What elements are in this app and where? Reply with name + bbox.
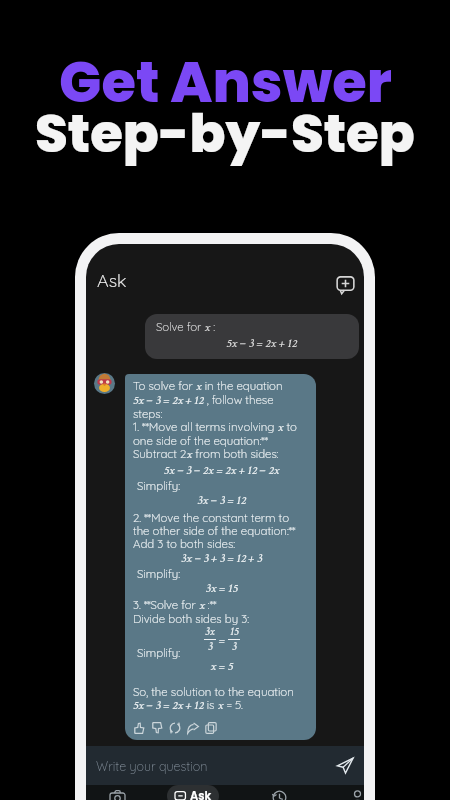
staticText: 3x [205,625,215,639]
button[interactable] [110,790,125,800]
staticText: 3 [208,640,213,654]
staticText: x = 5 [133,658,310,674]
staticText: = [216,632,228,648]
staticText: Step-by-Step [35,96,415,170]
staticText: 3. **Solve for x :** Divide both sides b… [133,597,250,625]
staticText: So, the solution to the equation 5x − 3 … [133,684,294,713]
staticText: Get Answer [59,43,392,121]
staticText: 3x − 3 = 12 [133,492,310,508]
staticText: Write your question [96,758,208,774]
staticText: 3x = 15 [133,580,310,596]
staticText: Simplify: [137,566,181,580]
staticText: 3x − 3 + 3 = 12 + 3 [133,550,310,566]
staticText: Solve for x : [156,319,216,335]
staticText: To solve for x in the equation 5x − 3 = … [133,378,297,462]
button[interactable]: Write your question [86,746,364,785]
staticText: Simplify: [137,478,181,492]
button[interactable]: To solve for x in the equation 5x − 3 = … [125,374,316,740]
staticText: 2. **Move the constant term to the other… [133,510,296,550]
staticText: 5x − 3 = 2x + 12 [170,335,353,351]
button[interactable]: Ask [167,785,219,800]
staticText: Ask [190,788,212,800]
staticText: 15 [230,625,239,639]
button[interactable]: Solve for x : [145,314,359,359]
button[interactable] [272,790,287,800]
button[interactable] [337,757,354,774]
staticText: Ask [97,269,127,292]
button[interactable] [336,275,355,294]
staticText: 5x − 3 − 2x = 2x + 12 − 2x [133,462,310,478]
button[interactable] [350,790,364,800]
staticText: Simplify: [137,645,181,659]
staticText: 3 [232,640,237,654]
